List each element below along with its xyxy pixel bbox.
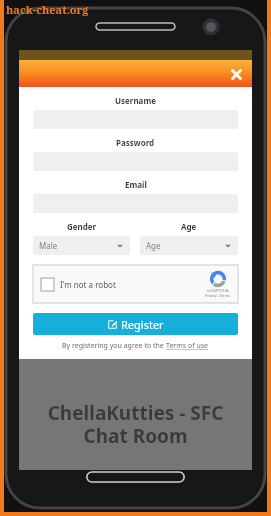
button[interactable]: Terms of use [166,341,209,351]
button[interactable]: Male [33,236,130,255]
staticText: I'm not a robot [60,279,116,290]
staticText: Password [116,137,155,148]
staticText: Gender [67,221,97,232]
staticText: ChellaKutties - SFC Chat Room [25,400,246,449]
staticText: reCAPTCHA [207,288,229,293]
button[interactable]: Register [33,313,238,335]
staticText: By registering you agree to the [62,341,166,351]
staticText: Male [39,240,58,251]
staticText: Email [125,179,147,190]
button[interactable]: I'm not a robot [33,265,238,303]
staticText: Privacy - Terms [205,293,230,298]
staticText: hack-cheat.org [6,2,89,17]
staticText: Username [115,95,156,106]
button[interactable]: Age [140,236,238,255]
staticText: Register [121,317,164,332]
button[interactable]: Close [226,64,246,84]
staticText: Age [146,240,161,251]
staticText: Age [181,221,197,232]
